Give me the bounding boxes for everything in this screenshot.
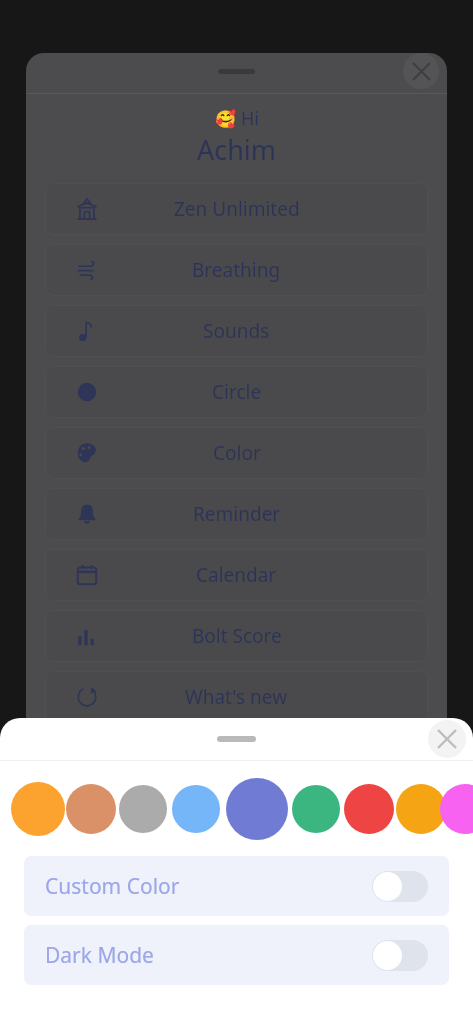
staticText: Achim [26, 131, 447, 168]
staticText: Bolt Score [192, 623, 282, 649]
button[interactable]: Bolt Score [45, 610, 428, 662]
button[interactable]: Zen Unlimited [45, 183, 428, 235]
staticText: Circle [212, 379, 262, 405]
button[interactable]: Close [403, 53, 439, 89]
button[interactable]: Color [45, 427, 428, 479]
staticText: Color [213, 440, 261, 466]
staticText: Custom Color [45, 872, 180, 901]
button[interactable]: Custom Color [24, 856, 449, 916]
staticText: 🥰 [215, 107, 241, 130]
staticText: Zen Unlimited [174, 196, 300, 222]
staticText: What's new [185, 684, 288, 710]
button[interactable]: Reminder [45, 488, 428, 540]
button[interactable]: Breathing [45, 244, 428, 296]
button[interactable]: Calendar [45, 549, 428, 601]
staticText: Calendar [196, 562, 277, 588]
button[interactable]: Close [428, 720, 466, 758]
staticText: Reminder [193, 501, 281, 527]
button[interactable]: Circle [45, 366, 428, 418]
button[interactable]: What's new [45, 671, 428, 723]
staticText: Hi [241, 106, 259, 131]
staticText: Sounds [203, 318, 270, 344]
button[interactable]: Dark Mode [24, 925, 449, 985]
button[interactable]: Sounds [45, 305, 428, 357]
staticText: Breathing [192, 257, 281, 283]
staticText: Dark Mode [45, 941, 154, 970]
